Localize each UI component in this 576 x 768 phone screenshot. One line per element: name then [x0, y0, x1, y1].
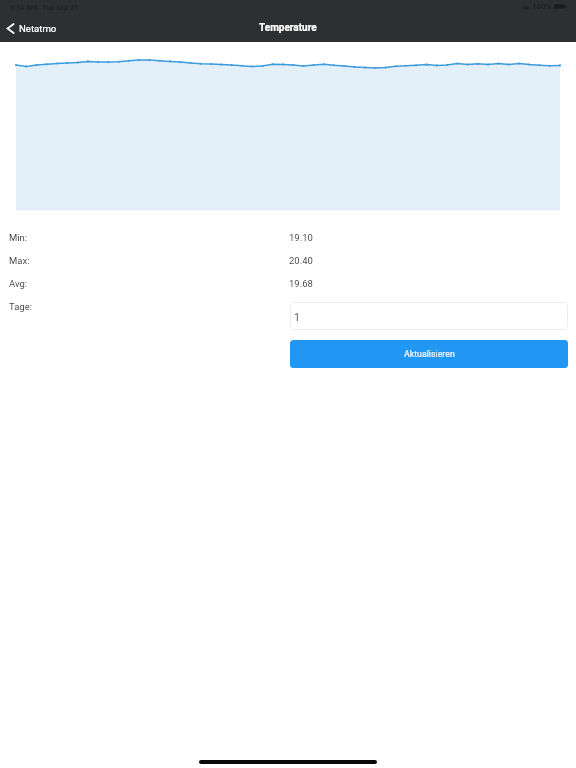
- staticText: Netatmo: [19, 23, 57, 34]
- button[interactable]: Back: [0, 19, 65, 38]
- staticText: Max:: [9, 255, 30, 266]
- button[interactable]: Aktualisieren: [290, 340, 568, 368]
- staticText: Temperature: [259, 22, 317, 34]
- other: Back: [7, 23, 14, 34]
- staticText: Avg:: [9, 278, 28, 289]
- staticText: 9:34 AM Tue Sep 21: [10, 3, 79, 11]
- staticText: 19.68: [289, 278, 313, 289]
- staticText: Tage:: [9, 301, 32, 312]
- other: Wi-Fi: [522, 3, 530, 11]
- staticText: 1: [294, 311, 300, 323]
- staticText: 20.40: [289, 255, 313, 266]
- staticText: 100%: [532, 2, 552, 11]
- staticText: 19.10: [289, 232, 313, 243]
- staticText: Min:: [9, 232, 28, 243]
- button[interactable]: 1: [290, 302, 568, 330]
- staticText: Aktualisieren: [404, 349, 455, 359]
